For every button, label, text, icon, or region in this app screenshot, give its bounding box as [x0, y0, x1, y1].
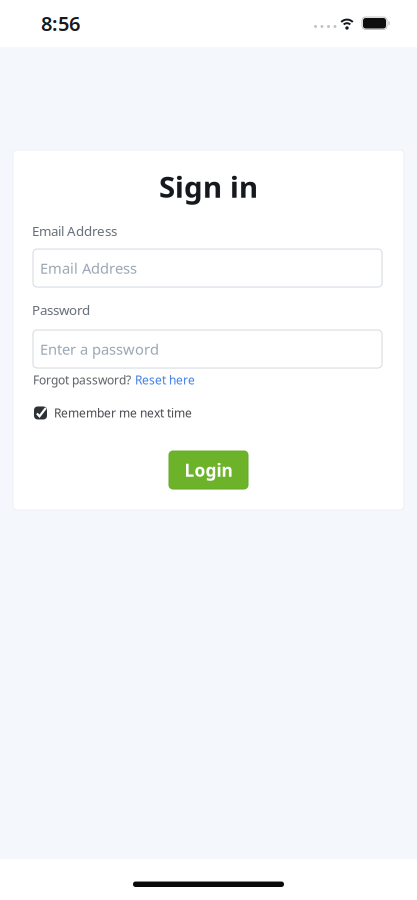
staticText: Reset here	[135, 372, 195, 388]
textField[interactable]: Enter a password	[33, 330, 382, 368]
staticText: Email Address	[32, 222, 117, 240]
button[interactable]: Login	[169, 451, 248, 489]
staticText: Password	[32, 301, 90, 319]
staticText: Email Address	[40, 258, 137, 278]
button[interactable]: Reset here	[135, 372, 195, 388]
staticText: Login	[184, 458, 232, 481]
staticText: Forgot password?	[33, 372, 131, 388]
textField[interactable]: Email Address	[33, 249, 382, 287]
staticText: Remember me next time	[54, 405, 192, 421]
staticText: Enter a password	[40, 339, 159, 359]
button[interactable]: Remember me next time	[34, 405, 192, 421]
staticText: 8:56	[41, 10, 80, 37]
staticText: Sign in	[159, 167, 258, 206]
